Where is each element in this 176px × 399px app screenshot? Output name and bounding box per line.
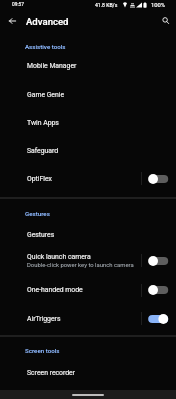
button[interactable]: Off <box>148 282 176 298</box>
button[interactable] <box>0 80 176 108</box>
button[interactable] <box>0 276 176 304</box>
staticText: Safeguard <box>27 147 59 155</box>
staticText: 41.8 KB/s <box>95 2 118 8</box>
button[interactable] <box>0 52 176 80</box>
button[interactable] <box>0 136 176 164</box>
button[interactable] <box>0 108 176 136</box>
staticText: Quick launch camera <box>27 253 91 261</box>
staticText: Screen tools <box>25 347 60 354</box>
button[interactable]: Off <box>148 171 176 187</box>
button[interactable] <box>0 246 176 275</box>
button[interactable] <box>0 220 176 248</box>
staticText: Mobile Manager <box>27 62 77 70</box>
staticText: One-handed mode <box>27 286 83 294</box>
staticText: Twin Apps <box>27 119 59 127</box>
button[interactable] <box>0 358 176 386</box>
staticText: Game Genie <box>27 91 65 99</box>
button[interactable] <box>0 164 176 193</box>
staticText: Assistive tools <box>25 43 66 50</box>
button[interactable]: Back <box>4 13 20 29</box>
staticText: 09:57 <box>12 2 24 8</box>
staticText: 100% <box>151 2 166 9</box>
staticText: OptiFlex <box>27 175 52 183</box>
button[interactable]: Search <box>158 13 174 29</box>
staticText: Double-click power key to launch camera <box>27 262 134 269</box>
button[interactable]: On <box>148 311 176 327</box>
staticText: Advanced <box>26 16 69 27</box>
button[interactable]: Home <box>72 394 104 396</box>
staticText: Gestures <box>27 231 55 239</box>
button[interactable] <box>0 304 176 333</box>
button[interactable]: Off <box>148 253 176 269</box>
staticText: Screen recorder <box>27 369 76 377</box>
staticText: Gestures <box>25 210 50 217</box>
staticText: AirTriggers <box>27 315 61 323</box>
